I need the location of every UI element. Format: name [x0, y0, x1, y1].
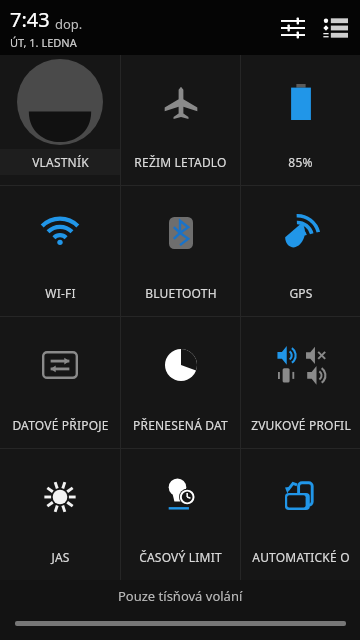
staticText: PŘENESENÁ DAT: [133, 417, 228, 433]
button[interactable]: VLASTNÍK: [0, 55, 120, 185]
button[interactable]: WI-FI: [0, 186, 120, 316]
button[interactable]: PŘENESENÁ DAT: [121, 317, 240, 448]
button[interactable]: ZVUKOVÉ PROFIL: [241, 317, 360, 448]
staticText: DATOVÉ PŘIPOJE: [12, 417, 109, 433]
staticText: ÚT, 1. LEDNA: [10, 35, 77, 50]
button[interactable]: GPS: [241, 186, 360, 316]
staticText: WI-FI: [45, 285, 76, 301]
button[interactable]: Notifications list: [320, 13, 350, 43]
staticText: VLASTNÍK: [32, 154, 89, 170]
staticText: GPS: [289, 285, 313, 301]
staticText: 7:43: [10, 6, 50, 33]
button[interactable]: ČASOVÝ LIMIT: [121, 449, 240, 580]
button[interactable]: REŽIM LETADLO: [121, 55, 240, 185]
button[interactable]: DATOVÉ PŘIPOJE: [0, 317, 120, 448]
staticText: BLUETOOTH: [145, 285, 217, 301]
staticText: JAS: [51, 549, 70, 565]
button[interactable]: Close panel: [0, 612, 360, 634]
staticText: REŽIM LETADLO: [134, 154, 227, 170]
button[interactable]: AUTOMATICKÉ O: [241, 449, 360, 580]
staticText: ČASOVÝ LIMIT: [139, 549, 222, 565]
staticText: Pouze tísňová volání: [118, 587, 243, 605]
button[interactable]: Settings: [278, 13, 308, 43]
staticText: AUTOMATICKÉ O: [252, 549, 350, 565]
staticText: ZVUKOVÉ PROFIL: [251, 417, 351, 433]
staticText: dop.: [55, 15, 83, 33]
button[interactable]: BLUETOOTH: [121, 186, 240, 316]
staticText: 85%: [288, 154, 313, 170]
button[interactable]: JAS: [0, 449, 120, 580]
button[interactable]: 85%: [241, 55, 360, 185]
